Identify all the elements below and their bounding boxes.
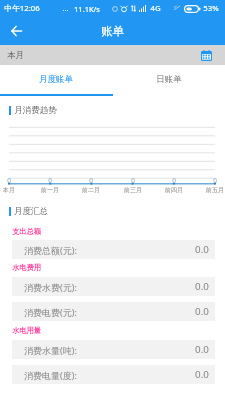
staticText: 0: [113, 176, 153, 185]
staticText: 前三月: [113, 186, 153, 194]
button[interactable]: 选择月份: [201, 50, 212, 61]
staticText: 水电用量: [12, 326, 41, 335]
staticText: 53%: [203, 3, 219, 14]
staticText: 本月: [7, 50, 24, 61]
staticText: 0: [0, 176, 29, 185]
staticText: 4G: [150, 3, 161, 14]
staticText: 月消费趋势: [14, 105, 57, 116]
button[interactable]: 消费电费(元):: [12, 302, 215, 321]
staticText: 0: [195, 176, 225, 185]
button[interactable]: 消费总额(元):: [12, 240, 215, 259]
staticText: 消费总额(元):: [24, 244, 77, 256]
staticText: 日账单: [156, 74, 182, 85]
staticText: 0.0: [195, 343, 209, 356]
staticText: 前一月: [30, 186, 70, 194]
button[interactable]: 消费电量(度):: [12, 365, 215, 384]
button[interactable]: 本月: [0, 45, 225, 65]
staticText: 0.0: [195, 305, 209, 318]
staticText: 水电费用: [12, 263, 41, 272]
staticText: 支出总额: [12, 227, 41, 236]
staticText: 0: [71, 176, 111, 185]
staticText: 消费电费(元):: [24, 306, 77, 318]
staticText: 中午12:06: [4, 3, 40, 14]
staticText: 本月: [0, 186, 29, 194]
button[interactable]: 返回: [2, 17, 30, 45]
staticText: 消费水费(元):: [24, 281, 77, 293]
staticText: 11.1K/s: [74, 4, 100, 14]
staticText: 0: [30, 176, 70, 185]
staticText: 账单: [101, 24, 124, 38]
button[interactable]: 月度账单: [0, 65, 112, 96]
staticText: 消费水量(吨):: [24, 344, 77, 356]
button[interactable]: 日账单: [112, 65, 225, 96]
staticText: 0.0: [195, 368, 209, 381]
staticText: 前五月: [195, 186, 225, 194]
staticText: ...: [62, 3, 69, 13]
staticText: 消费电量(度):: [24, 369, 77, 381]
staticText: 前二月: [71, 186, 111, 194]
staticText: 前四月: [154, 186, 194, 194]
staticText: 0: [154, 176, 194, 185]
button[interactable]: 消费水量(吨):: [12, 340, 215, 359]
staticText: 0.0: [195, 243, 209, 256]
button[interactable]: 消费水费(元):: [12, 277, 215, 296]
staticText: 月度账单: [39, 74, 73, 85]
staticText: 0.0: [195, 280, 209, 293]
staticText: 月度汇总: [14, 206, 48, 217]
